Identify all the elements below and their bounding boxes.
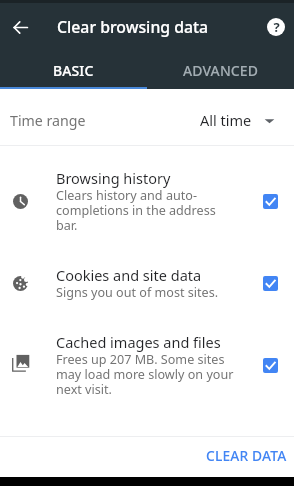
staticText: Signs you out of most sites.: [56, 285, 219, 300]
button[interactable]: Cached images and files: [0, 317, 294, 414]
staticText: Cookies and site data: [56, 267, 202, 285]
staticText: All time: [200, 110, 252, 130]
staticText: BASIC: [53, 61, 94, 80]
button[interactable]: BASIC: [0, 52, 147, 89]
button[interactable]: Cookies and site data: [0, 250, 294, 317]
staticText: ?: [273, 18, 280, 35]
staticText: ADVANCED: [183, 61, 259, 80]
staticText: Clear browsing data: [57, 16, 209, 38]
button[interactable]: ADVANCED: [147, 52, 294, 89]
staticText: Clears history and auto-completions in t…: [56, 188, 236, 233]
staticText: CLEAR DATA: [206, 446, 287, 465]
staticText: Time range: [10, 111, 86, 130]
staticText: Frees up 207 MB. Some sites may load mor…: [56, 352, 236, 397]
button[interactable]: CLEAR DATA: [192, 439, 294, 476]
button[interactable]: Browsing history: [0, 153, 294, 250]
staticText: Cached images and files: [56, 334, 221, 352]
staticText: Browsing history: [56, 170, 171, 188]
button[interactable]: Back: [5, 12, 35, 42]
button[interactable]: Time range: [0, 89, 294, 145]
button[interactable]: Help: [262, 13, 290, 41]
